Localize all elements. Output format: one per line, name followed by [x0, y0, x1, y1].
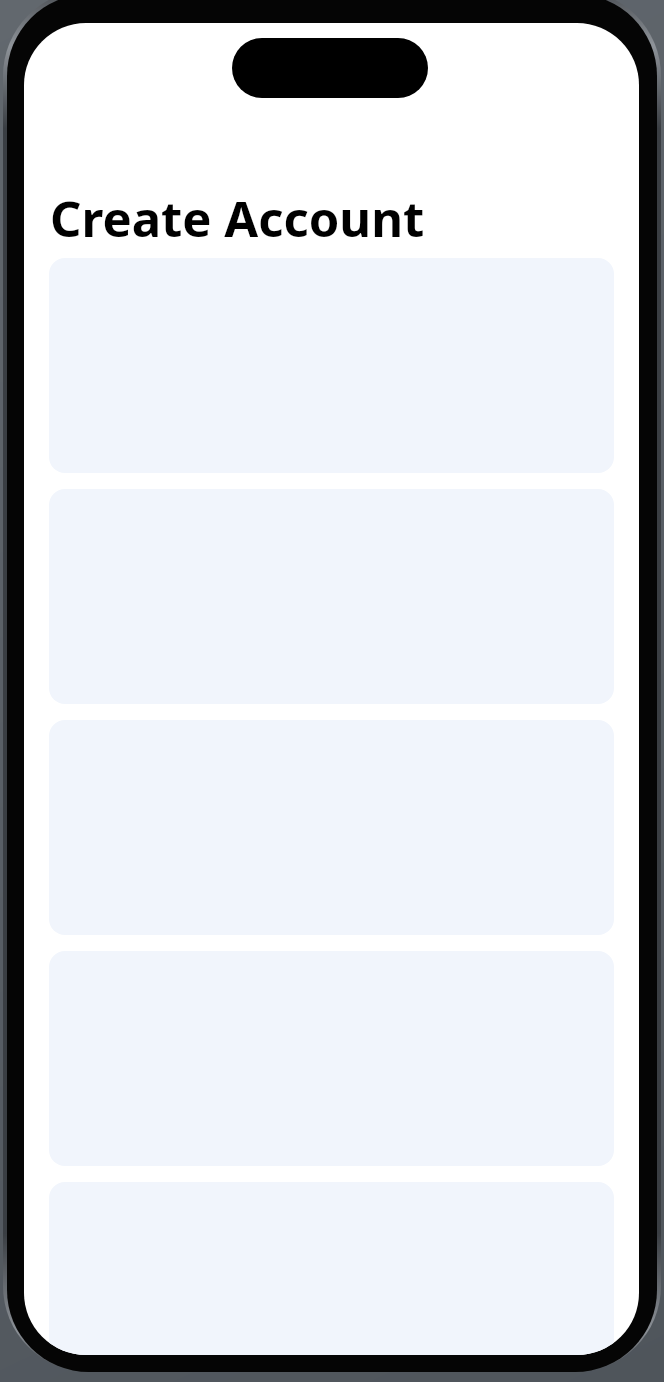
button[interactable]: Form field placeholder 5: [49, 1182, 614, 1355]
staticText: Create Account: [50, 185, 425, 252]
other: Dynamic Island: [232, 38, 428, 98]
